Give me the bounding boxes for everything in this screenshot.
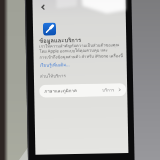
staticText: ข้อมูลและบริการ [39, 35, 81, 45]
staticText: ภาษาและภูมิภาค [44, 87, 77, 95]
staticText: เราให้ความสำคัญกับความเป็นส่วนตัวของคุณ … [39, 41, 124, 61]
button[interactable]: เรียนรู้เพิ่มเติม... [40, 61, 70, 69]
button[interactable]: ภาษาและภูมิภาค [39, 83, 126, 98]
staticText: บริการ [102, 86, 115, 93]
button[interactable]: Back [36, 1, 49, 13]
staticText: ส่วนให้บริการ [40, 72, 66, 80]
